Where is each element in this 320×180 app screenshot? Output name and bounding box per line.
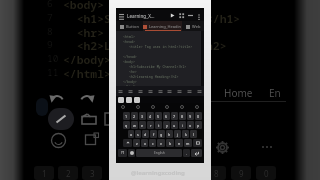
button[interactable]: s bbox=[135, 130, 141, 138]
staticText: b bbox=[169, 141, 172, 146]
button[interactable]: Redo bbox=[78, 88, 96, 106]
button[interactable]: 1 bbox=[34, 166, 54, 180]
button[interactable]: z bbox=[133, 139, 140, 147]
button[interactable]: e bbox=[139, 121, 146, 129]
button[interactable]: Editor tool 7 bbox=[187, 89, 192, 94]
button[interactable]: English bbox=[136, 149, 182, 157]
button[interactable]: 7 bbox=[171, 112, 178, 120]
button[interactable]: App 2 bbox=[134, 97, 140, 103]
button[interactable]: More bbox=[262, 146, 272, 148]
button[interactable]: h bbox=[166, 130, 173, 138]
button[interactable]: Keyboard tool 3 bbox=[165, 105, 169, 109]
staticText: </h1> bbox=[206, 11, 241, 27]
button[interactable]: Symbols bbox=[118, 149, 127, 157]
button[interactable]: l bbox=[190, 130, 197, 138]
button[interactable]: b bbox=[166, 139, 174, 147]
button[interactable]: Keyboard tool 5 bbox=[195, 105, 199, 109]
button[interactable]: Editor tool 8 bbox=[197, 89, 202, 94]
button[interactable]: Button bbox=[116, 21, 143, 31]
staticText: i bbox=[182, 123, 183, 128]
button[interactable]: Period bbox=[183, 149, 190, 157]
button[interactable]: Keyboard tool 4 bbox=[180, 105, 184, 109]
staticText: c bbox=[152, 141, 154, 146]
staticText: English bbox=[154, 151, 165, 155]
button[interactable]: Editor tool 0 bbox=[118, 89, 123, 94]
button[interactable]: 6 bbox=[163, 112, 170, 120]
button[interactable]: App 0 bbox=[118, 97, 124, 103]
button[interactable]: Insert image bbox=[84, 132, 100, 148]
staticText: 6 bbox=[47, 0, 53, 10]
button[interactable]: g bbox=[158, 130, 165, 138]
button[interactable]: t bbox=[155, 121, 162, 129]
staticText: l bbox=[193, 132, 194, 137]
button[interactable]: Menu bbox=[119, 13, 124, 18]
button[interactable]: j bbox=[174, 130, 181, 138]
button[interactable]: 9 bbox=[187, 112, 194, 120]
button[interactable]: Editor tool 3 bbox=[148, 89, 153, 94]
button[interactable]: m bbox=[184, 139, 192, 147]
button[interactable]: v bbox=[157, 139, 165, 147]
button[interactable]: 9 bbox=[231, 166, 251, 180]
button[interactable]: 3 bbox=[82, 166, 102, 180]
button[interactable]: a bbox=[128, 130, 134, 138]
button[interactable]: App 1 bbox=[126, 97, 132, 103]
button[interactable]: Shift bbox=[123, 139, 132, 147]
button[interactable]: Folder bbox=[81, 112, 98, 127]
staticText: 9 bbox=[239, 168, 244, 179]
button[interactable]: Editor tool 1 bbox=[128, 89, 133, 94]
button[interactable]: Draw bbox=[48, 108, 74, 130]
button[interactable]: 8 bbox=[206, 166, 226, 180]
button[interactable]: Backspace bbox=[193, 139, 202, 147]
button[interactable]: c bbox=[149, 139, 156, 147]
button[interactable]: p bbox=[195, 121, 202, 129]
button[interactable]: Emoji bbox=[50, 132, 67, 149]
button[interactable]: Web bbox=[182, 21, 204, 31]
staticText: h bbox=[168, 132, 171, 137]
button[interactable]: r bbox=[147, 121, 154, 129]
button[interactable]: Settings bbox=[215, 140, 230, 155]
button[interactable]: Grid bbox=[179, 13, 184, 18]
button[interactable]: Home bbox=[224, 86, 253, 100]
button[interactable]: 1 bbox=[123, 112, 130, 120]
button[interactable]: En bbox=[269, 86, 281, 100]
staticText: m bbox=[186, 141, 190, 146]
button[interactable]: 3 bbox=[139, 112, 146, 120]
button[interactable]: 0 bbox=[256, 166, 276, 180]
button[interactable]: k bbox=[182, 130, 189, 138]
button[interactable]: Run bbox=[170, 13, 175, 18]
button[interactable]: i bbox=[179, 121, 186, 129]
staticText: Button bbox=[126, 24, 139, 29]
button[interactable]: d bbox=[142, 130, 149, 138]
button[interactable]: Keyboard tool 1 bbox=[136, 105, 140, 109]
button[interactable]: o bbox=[187, 121, 194, 129]
button[interactable]: More options bbox=[197, 14, 201, 18]
button[interactable]: 0 bbox=[195, 112, 202, 120]
button[interactable]: Editor tool 5 bbox=[167, 89, 172, 94]
button[interactable]: w bbox=[131, 121, 138, 129]
button[interactable]: Editor tool 4 bbox=[158, 89, 163, 94]
button[interactable]: Editor tool 2 bbox=[138, 89, 143, 94]
staticText: h2> bbox=[206, 38, 227, 54]
button[interactable]: q bbox=[123, 121, 130, 129]
button[interactable]: 5 bbox=[155, 112, 162, 120]
staticText: r bbox=[150, 123, 152, 128]
button[interactable]: Search bbox=[188, 13, 193, 18]
button[interactable]: n bbox=[175, 139, 183, 147]
button[interactable]: x bbox=[141, 139, 148, 147]
staticText: g bbox=[160, 132, 163, 137]
button[interactable]: 4 bbox=[147, 112, 154, 120]
staticText: </html> bbox=[63, 66, 111, 82]
button[interactable]: 2 bbox=[58, 166, 78, 180]
button[interactable]: u bbox=[171, 121, 178, 129]
button[interactable]: Emoji bbox=[128, 149, 135, 157]
button[interactable]: 2 bbox=[131, 112, 138, 120]
button[interactable]: f bbox=[150, 130, 157, 138]
button[interactable]: y bbox=[163, 121, 170, 129]
button[interactable]: Enter bbox=[191, 149, 202, 157]
button[interactable]: Keyboard tool 2 bbox=[151, 105, 155, 109]
button[interactable]: Learning_Heading.html bbox=[143, 21, 182, 31]
button[interactable]: 8 bbox=[179, 112, 186, 120]
button[interactable]: Keyboard tool 0 bbox=[121, 105, 125, 109]
button[interactable]: Undo bbox=[48, 88, 66, 106]
button[interactable]: Editor tool 6 bbox=[177, 89, 182, 94]
